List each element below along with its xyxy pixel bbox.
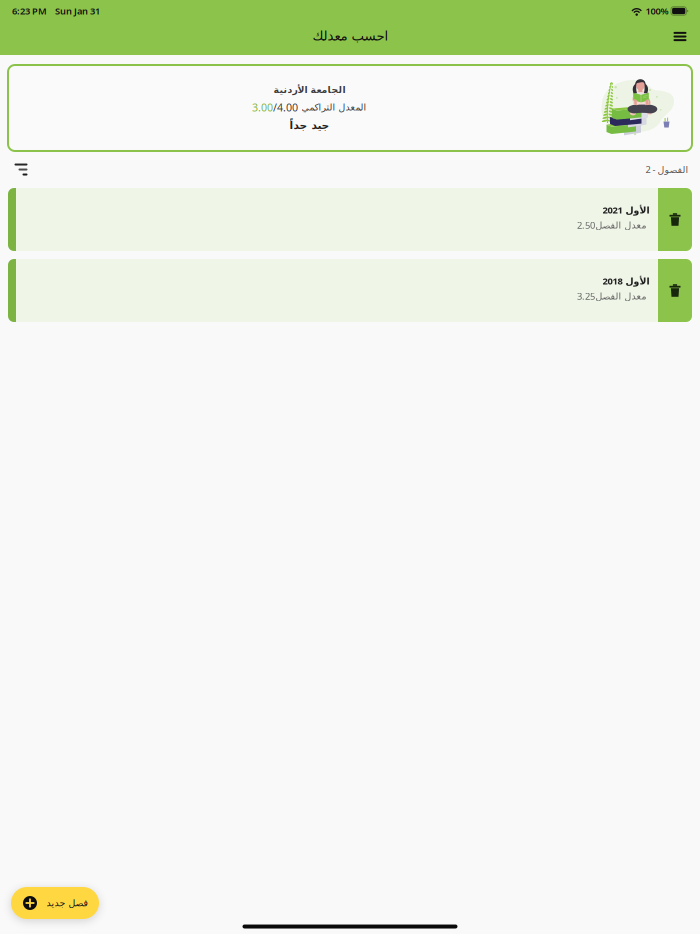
button[interactable]: Menu <box>667 23 693 49</box>
staticText: فصل جديد <box>46 898 87 908</box>
staticText: 3.00 <box>252 100 273 114</box>
button[interactable]: Sort <box>6 157 36 181</box>
staticText: 3.25 <box>577 290 595 302</box>
button[interactable]: الأول 2018 <box>0 259 700 322</box>
button[interactable]: Delete <box>658 259 692 322</box>
staticText: احسب معدلك <box>312 28 388 43</box>
staticText: الأول 2018 <box>602 275 649 287</box>
staticText: /4.00 <box>273 100 301 114</box>
staticText: الأول 2021 <box>602 204 649 216</box>
staticText: المعدل التراكمي <box>301 102 366 112</box>
staticText: الجامعة الأردنية <box>273 85 345 95</box>
staticText: معدل الفصل <box>595 291 649 301</box>
staticText: جيد جداً <box>289 119 329 131</box>
staticText: 6:23 PM <box>12 5 47 17</box>
staticText: 100% <box>645 5 668 17</box>
staticText: الفصول - 2 <box>645 163 688 176</box>
staticText: 2.50 <box>577 219 595 231</box>
button[interactable]: Delete <box>658 188 692 251</box>
staticText: Sun Jan 31 <box>55 5 100 17</box>
button[interactable]: فصل جديد <box>11 887 99 919</box>
button[interactable]: الأول 2021 <box>0 188 700 251</box>
staticText: معدل الفصل <box>595 220 649 230</box>
